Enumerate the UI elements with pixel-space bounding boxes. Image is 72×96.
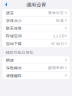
staticText: 聊天背景 bbox=[6, 25, 22, 31]
button[interactable]: 自动下载 bbox=[2, 40, 70, 47]
staticText: 自动下载 bbox=[6, 41, 22, 46]
staticText: 朗读 bbox=[6, 57, 14, 63]
button[interactable]: 聊天背景 bbox=[2, 24, 70, 32]
button[interactable]: 深色模式 bbox=[2, 64, 70, 71]
staticText: 辅助功能与隐私 bbox=[5, 50, 33, 55]
staticText: 深色模式 bbox=[6, 65, 22, 71]
staticText: 通用设置 bbox=[26, 1, 46, 8]
button[interactable]: 清理缓存 bbox=[2, 72, 70, 79]
button[interactable]: Back bbox=[0, 0, 10, 9]
button[interactable]: 存储空间 bbox=[2, 32, 70, 39]
button[interactable]: 朗读 bbox=[2, 56, 70, 64]
staticText: 清理缓存 bbox=[6, 72, 22, 78]
staticText: 字体大小 bbox=[6, 17, 22, 23]
button[interactable]: 语言 bbox=[2, 9, 70, 16]
staticText: 存储空间 bbox=[6, 33, 22, 39]
staticText: 跟随系统 bbox=[48, 65, 64, 70]
button[interactable]: 字体大小 bbox=[2, 17, 70, 24]
staticText: 1.2 GB bbox=[53, 33, 64, 38]
staticText: 标准 bbox=[56, 18, 64, 23]
staticText: 语言 bbox=[6, 10, 14, 16]
staticText: 简体中文 bbox=[48, 10, 64, 15]
staticText: 仅 Wi-Fi bbox=[51, 41, 64, 46]
